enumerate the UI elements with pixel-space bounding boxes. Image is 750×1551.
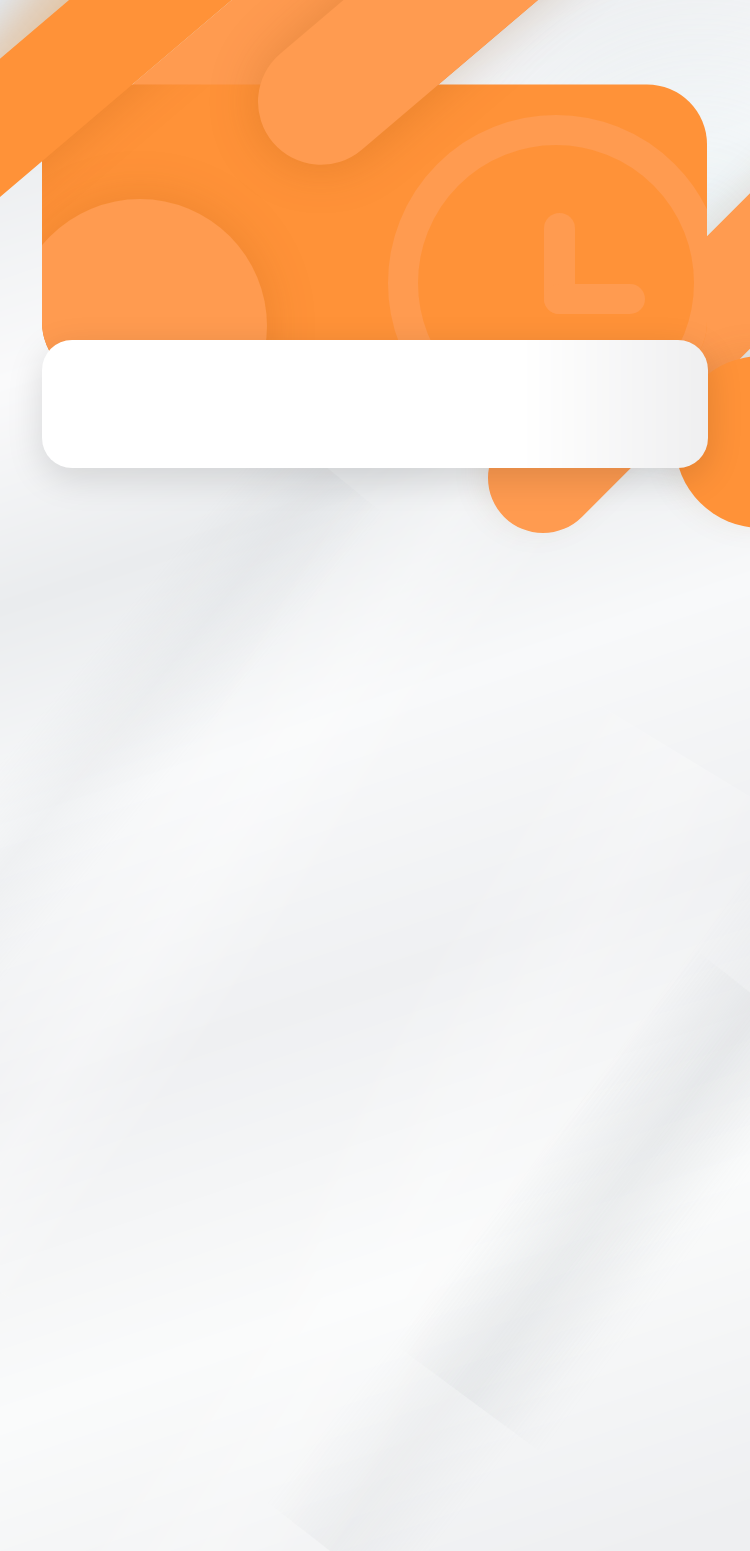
button[interactable]: Search bbox=[0, 0, 750, 1551]
